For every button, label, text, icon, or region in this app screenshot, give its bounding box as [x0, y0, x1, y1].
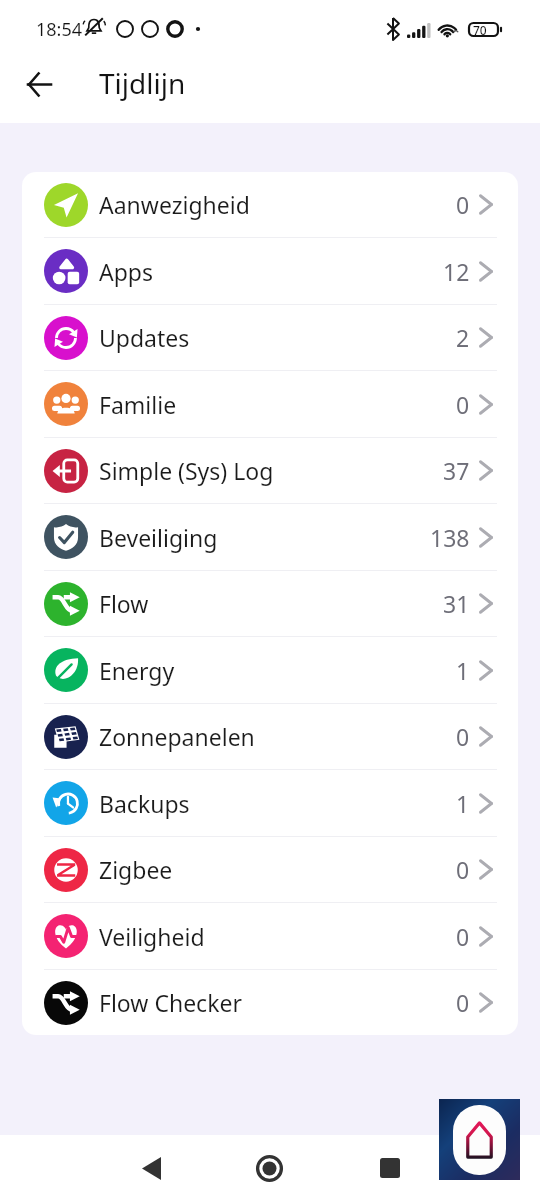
staticText: Zigbee [99, 854, 173, 885]
button[interactable]: Aanwezigheid [22, 172, 518, 237]
button[interactable]: Veiligheid [22, 903, 518, 969]
staticText: 1 [456, 655, 470, 686]
staticText: Updates [99, 322, 190, 353]
button[interactable]: Zonnepanelen [22, 704, 518, 769]
staticText: 1 [456, 788, 470, 819]
staticText: Flow Checker [99, 987, 242, 1018]
button[interactable]: Apps [22, 238, 518, 304]
staticText: 0 [456, 189, 470, 220]
button[interactable]: Updates [22, 305, 518, 370]
button[interactable]: Backups [22, 770, 518, 836]
button[interactable]: Zigbee [22, 837, 518, 902]
staticText: 2 [456, 322, 470, 353]
staticText: 0 [456, 921, 470, 952]
button[interactable]: Familie [22, 371, 518, 437]
staticText: 0 [456, 854, 470, 885]
staticText: 31 [443, 588, 470, 619]
button[interactable]: Back [129, 1140, 174, 1196]
staticText: 18:54 [36, 17, 83, 42]
staticText: Simple (Sys) Log [99, 455, 274, 486]
staticText: Veiligheid [99, 921, 205, 952]
button[interactable]: Flow [22, 571, 518, 636]
staticText: 70 [473, 22, 487, 38]
staticText: 0 [456, 721, 470, 752]
staticText: Energy [99, 655, 175, 686]
staticText: 0 [456, 389, 470, 420]
staticText: Beveiliging [99, 522, 218, 553]
button[interactable]: Beveiliging [22, 504, 518, 570]
button[interactable]: Flow Checker [22, 970, 518, 1035]
staticText: Familie [99, 389, 177, 420]
staticText: 138 [430, 522, 470, 553]
staticText: Apps [99, 256, 154, 287]
staticText: Flow [99, 588, 149, 619]
button[interactable]: Back [15, 60, 63, 108]
button[interactable]: Simple (Sys) Log [22, 438, 518, 503]
staticText: Aanwezigheid [99, 189, 250, 220]
staticText: 0 [456, 987, 470, 1018]
button[interactable]: Energy [22, 637, 518, 703]
button[interactable]: Home [247, 1140, 292, 1196]
button[interactable]: Homey app [439, 1099, 520, 1180]
staticText: Zonnepanelen [99, 721, 255, 752]
staticText: 12 [443, 256, 470, 287]
button[interactable]: Recent apps [367, 1140, 412, 1196]
staticText: 37 [443, 455, 470, 486]
staticText: Tijdlijn [99, 64, 186, 102]
staticText: Backups [99, 788, 190, 819]
